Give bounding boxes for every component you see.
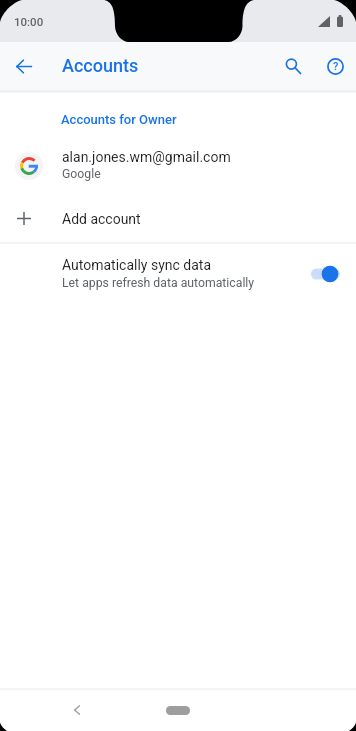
- button[interactable]: Add account: [0, 196, 356, 242]
- button[interactable]: Search: [274, 47, 312, 85]
- staticText: Automatically sync data: [62, 257, 212, 273]
- staticText: Accounts: [62, 55, 139, 76]
- staticText: ?: [333, 60, 339, 73]
- staticText: Google: [62, 167, 101, 181]
- button[interactable]: Automatically sync data: [0, 249, 356, 301]
- staticText: Let apps refresh data automatically: [62, 276, 255, 290]
- staticText: Add account: [62, 211, 141, 227]
- button[interactable]: Back: [62, 695, 92, 725]
- button[interactable]: Help and feedback: [316, 47, 354, 85]
- staticText: 10:00: [14, 15, 44, 28]
- button[interactable]: Automatically sync data: [311, 265, 340, 283]
- button[interactable]: Home: [166, 706, 190, 715]
- button[interactable]: alan.jones.wm@gmail.com: [0, 141, 356, 190]
- button[interactable]: Accounts for Owner: [0, 97, 356, 137]
- staticText: Accounts for Owner: [61, 112, 177, 127]
- staticText: alan.jones.wm@gmail.com: [62, 149, 231, 165]
- button[interactable]: Navigate up: [8, 50, 40, 82]
